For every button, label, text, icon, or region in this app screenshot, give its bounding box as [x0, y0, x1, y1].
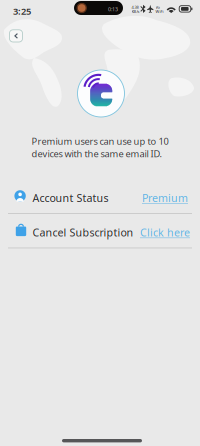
button[interactable]: Back: [9, 30, 22, 42]
staticText: WiFi: [155, 9, 163, 14]
staticText: Premium: [142, 191, 188, 205]
staticText: Vo: [155, 4, 159, 10]
staticText: Premium users can use up to 10 devices w…: [31, 135, 168, 160]
button[interactable]: Cancel Subscription: [0, 213, 200, 247]
button[interactable]: Account Status: [0, 179, 200, 213]
staticText: Click here: [140, 225, 190, 239]
staticText: Cancel Subscription: [32, 225, 133, 239]
staticText: 0:13: [108, 6, 118, 13]
staticText: 4.38: [131, 4, 138, 10]
staticText: Account Status: [32, 191, 108, 205]
staticText: 3:25: [13, 5, 31, 17]
staticText: KB/s: [131, 9, 139, 14]
